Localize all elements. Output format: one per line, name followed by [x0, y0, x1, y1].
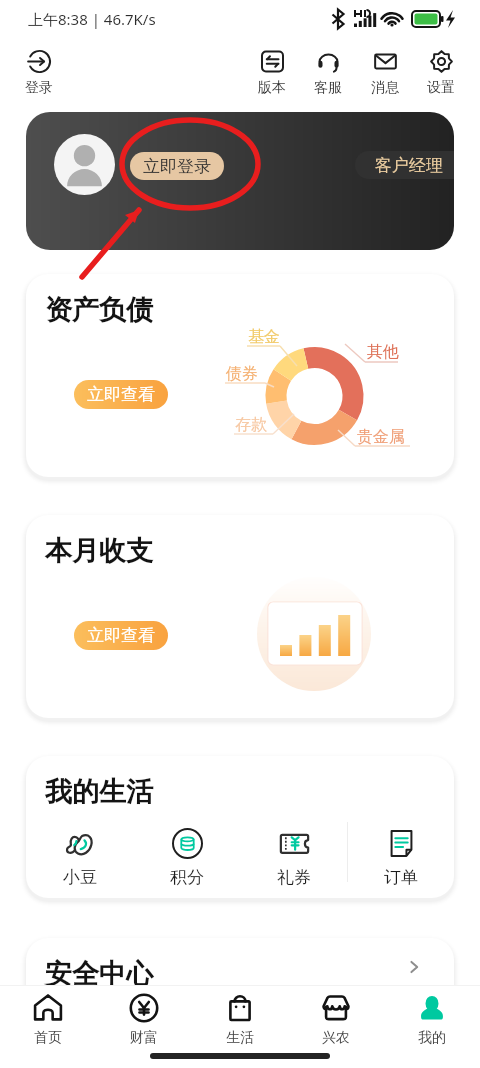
staticText: 资产负债	[45, 293, 153, 327]
staticText: 基金	[248, 327, 280, 347]
staticText: 贵金属	[357, 427, 405, 447]
button[interactable]: 设置	[419, 50, 463, 97]
staticText: 消息	[371, 79, 399, 97]
staticText: 安全中心	[45, 957, 153, 991]
staticText: 生活	[226, 1029, 254, 1047]
staticText: 客服	[314, 79, 342, 97]
button[interactable]: 登录	[17, 50, 61, 97]
staticText: 我的	[418, 1029, 446, 1047]
staticText: 客户经理	[375, 155, 443, 176]
button[interactable]: 立即登录	[130, 152, 224, 180]
staticText: 我的生活	[45, 775, 153, 809]
staticText: 积分	[170, 867, 204, 888]
staticText: 兴农	[322, 1029, 350, 1047]
staticText: 其他	[367, 342, 399, 362]
button[interactable]: 积分	[134, 828, 240, 888]
button[interactable]: 安全中心	[26, 938, 454, 1028]
button[interactable]: 小豆	[26, 828, 133, 888]
button[interactable]: 立即登录	[26, 112, 454, 250]
button[interactable]: 订单	[348, 828, 454, 888]
staticText: 礼券	[277, 867, 311, 888]
staticText: 登录	[25, 79, 53, 97]
button[interactable]: 生活	[192, 993, 288, 1047]
staticText: 设置	[427, 79, 455, 97]
staticText: 订单	[384, 867, 418, 888]
staticText: 版本	[258, 79, 286, 97]
button[interactable]: 首页	[0, 993, 96, 1047]
button[interactable]: 消息	[363, 50, 407, 97]
staticText: 本月收支	[45, 534, 153, 568]
button[interactable]: 立即查看	[74, 621, 168, 650]
button[interactable]: 礼券	[241, 828, 347, 888]
staticText: 首页	[34, 1029, 62, 1047]
staticText: 小豆	[63, 867, 97, 888]
staticText: 立即登录	[143, 156, 211, 177]
button[interactable]: 版本	[250, 50, 294, 97]
button[interactable]: 客服	[306, 50, 350, 97]
button[interactable]: 客户经理	[355, 151, 454, 179]
button[interactable]: 我的	[384, 993, 480, 1047]
staticText: 立即查看	[87, 625, 155, 646]
button[interactable]: 财富	[96, 993, 192, 1047]
staticText: 债券	[226, 364, 258, 384]
staticText: 上午8:38 | 46.7K/s	[28, 9, 156, 29]
button[interactable]: 立即查看	[74, 380, 168, 409]
button[interactable]: 兴农	[288, 993, 384, 1047]
staticText: 财富	[130, 1029, 158, 1047]
staticText: 存款	[235, 415, 267, 435]
staticText: 立即查看	[87, 384, 155, 405]
